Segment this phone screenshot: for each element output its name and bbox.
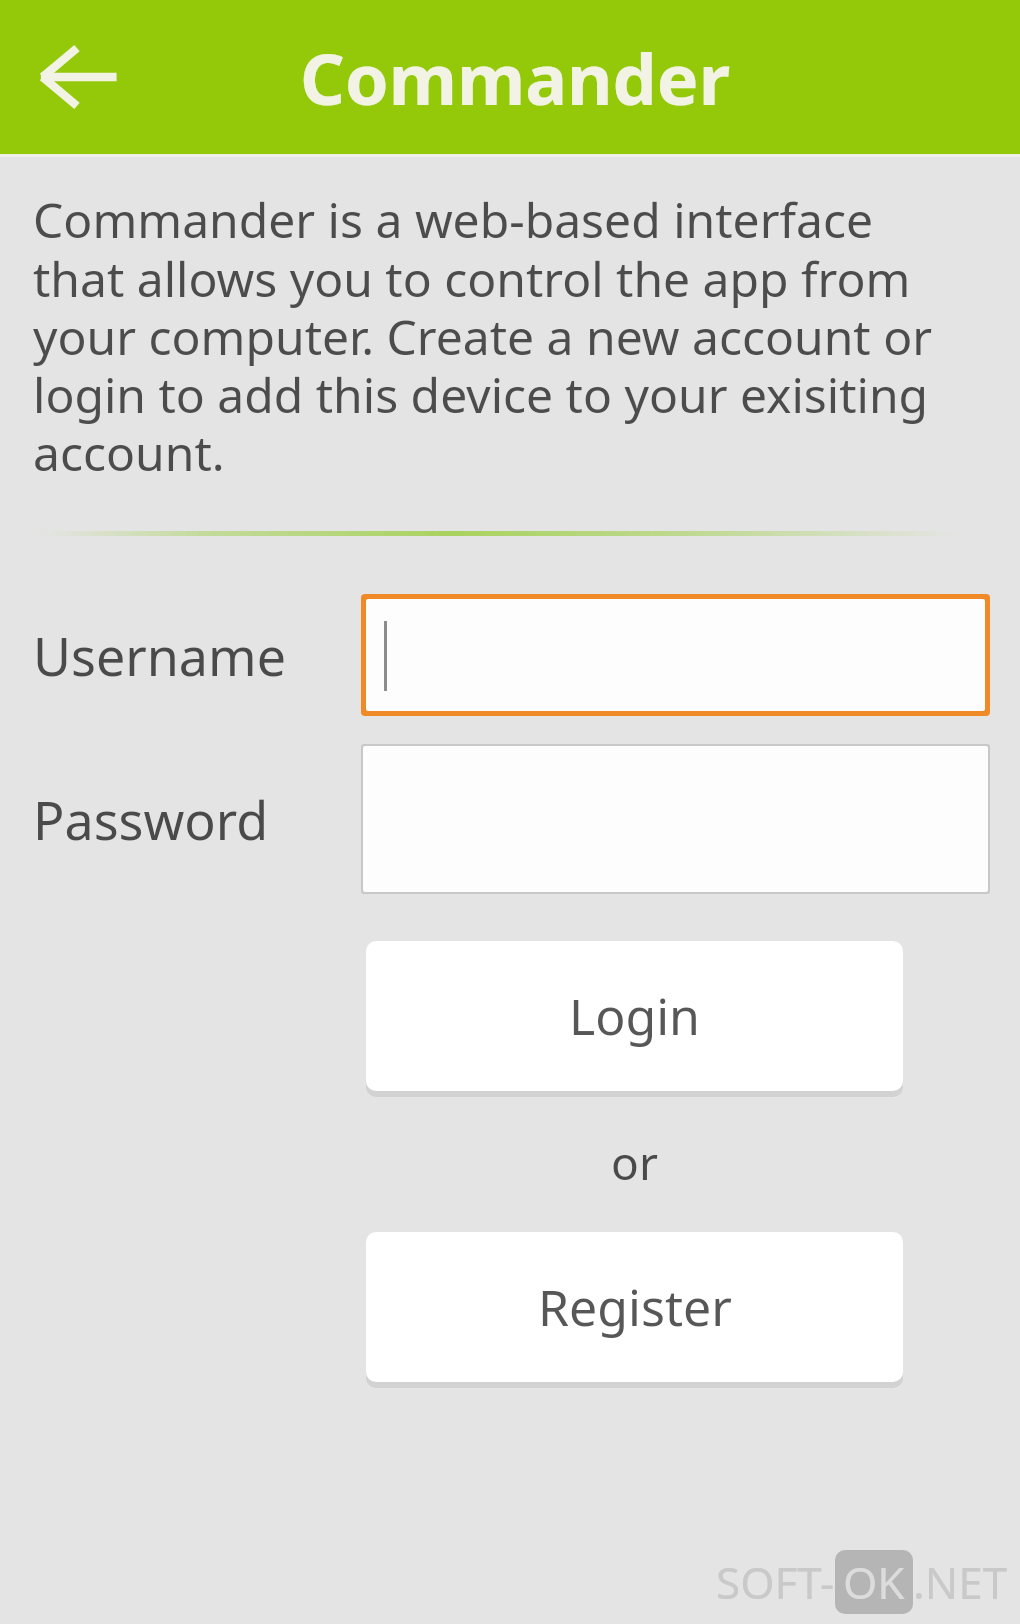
button[interactable]: Back: [18, 18, 136, 136]
button[interactable]: Login: [366, 941, 903, 1091]
staticText: .NET: [913, 1552, 1008, 1612]
button[interactable]: [366, 599, 985, 711]
staticText: or: [366, 1131, 903, 1194]
staticText: Login: [569, 982, 700, 1050]
staticText: SOFT-: [716, 1552, 835, 1612]
staticText: Register: [538, 1273, 732, 1341]
button[interactable]: Register: [366, 1232, 903, 1382]
staticText: Commander: [300, 30, 730, 125]
staticText: OK: [843, 1552, 905, 1612]
staticText: Password: [33, 784, 269, 855]
staticText: Commander is a web-based interface that …: [33, 187, 960, 485]
staticText: Username: [33, 620, 286, 691]
